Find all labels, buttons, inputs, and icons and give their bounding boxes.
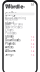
staticText: Made for you bbox=[5, 22, 23, 26]
staticText: 12 bbox=[31, 38, 35, 42]
button[interactable]: Library bbox=[4, 35, 36, 38]
staticText: Recently played bbox=[5, 18, 17, 25]
button[interactable]: Charts bbox=[4, 29, 36, 32]
button[interactable]: Songs bbox=[4, 53, 36, 56]
staticText: Artists bbox=[5, 45, 13, 49]
button[interactable]: Albums bbox=[4, 49, 36, 53]
staticText: 12 bbox=[31, 49, 35, 53]
staticText: 12 bbox=[31, 35, 35, 38]
staticText: New releases bbox=[5, 25, 22, 29]
staticText: 9:41 bbox=[6, 3, 13, 6]
staticText: 12 bbox=[31, 45, 35, 49]
button[interactable]: Podcasts bbox=[4, 32, 36, 35]
staticText: lıl bbox=[31, 3, 34, 6]
staticText: Wordlessly bbox=[5, 3, 25, 17]
staticText: 12 bbox=[31, 53, 35, 56]
button[interactable]: Downloads bbox=[4, 38, 36, 42]
button[interactable]: Made for you bbox=[4, 23, 36, 26]
staticText: Library bbox=[5, 35, 13, 38]
button[interactable]: Artists bbox=[4, 45, 36, 49]
staticText: Playlists bbox=[5, 42, 15, 45]
staticText: 12 bbox=[31, 42, 35, 45]
staticText: Downloads bbox=[5, 38, 20, 42]
staticText: Albums bbox=[5, 49, 15, 53]
button[interactable]: Recently played bbox=[4, 20, 36, 23]
button[interactable]: New releases bbox=[4, 26, 36, 29]
staticText: Good morning bbox=[5, 16, 26, 20]
staticText: Podcasts bbox=[5, 31, 16, 35]
button[interactable]: Playlists bbox=[4, 42, 36, 45]
button[interactable]: Good morning bbox=[4, 17, 36, 20]
staticText: Songs bbox=[5, 53, 13, 56]
staticText: Charts bbox=[5, 28, 13, 32]
